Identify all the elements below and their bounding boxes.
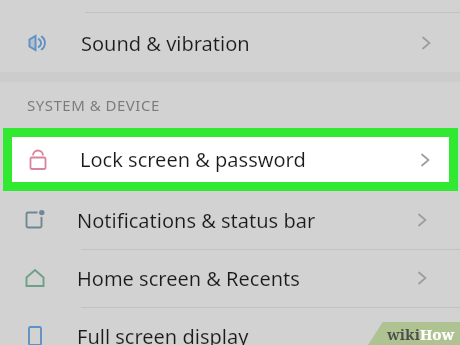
staticText: How <box>420 324 455 344</box>
staticText: Sound & vibration <box>81 30 250 57</box>
button[interactable]: Lock screen and password <box>3 128 458 191</box>
button[interactable]: Full screen display <box>0 307 460 345</box>
button[interactable]: Notifications and status bar <box>0 191 460 249</box>
staticText: Notifications & status bar <box>77 207 316 234</box>
other: Open <box>409 323 435 345</box>
other: Lock screen and password <box>25 147 51 173</box>
staticText: wiki <box>387 324 420 344</box>
other: Notifications and status bar <box>22 207 48 233</box>
button[interactable]: Home screen and Recents <box>0 249 460 307</box>
other: Sound and vibration <box>22 28 52 58</box>
staticText: Home screen & Recents <box>77 265 300 292</box>
staticText: Full screen display <box>77 323 249 345</box>
other: Open <box>413 30 439 56</box>
other: Full screen display <box>22 323 48 345</box>
other: Open <box>412 147 438 173</box>
staticText: SYSTEM & DEVICE <box>27 95 160 115</box>
other: Home screen and Recents <box>22 265 48 291</box>
staticText: Lock screen & password <box>80 146 306 173</box>
other: Open <box>409 265 435 291</box>
other: Open <box>409 207 435 233</box>
button[interactable]: Sound and vibration <box>0 0 460 72</box>
